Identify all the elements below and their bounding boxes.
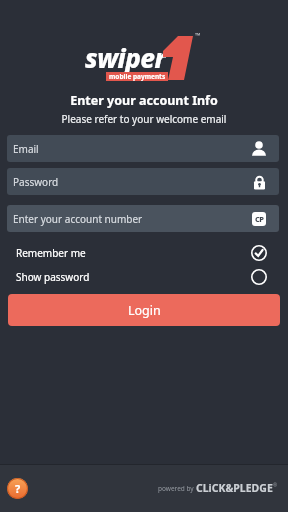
staticText: Show password — [16, 270, 90, 284]
staticText: mobile payments — [109, 72, 166, 81]
staticText: Please refer to your welcome email — [0, 112, 288, 126]
staticText: Login — [128, 302, 161, 319]
staticText: swiper — [85, 40, 166, 75]
staticText: ? — [15, 481, 21, 496]
button[interactable]: Remember me — [7, 244, 280, 262]
staticText: Email — [13, 142, 39, 156]
button[interactable]: Enter your account number — [7, 205, 279, 232]
staticText: Password — [13, 175, 59, 189]
button[interactable]: ? — [7, 478, 28, 499]
button[interactable]: Login — [8, 294, 280, 326]
staticText: Remember me — [16, 246, 86, 260]
staticText: Enter your account number — [13, 212, 143, 226]
button[interactable]: Show password — [7, 268, 280, 286]
button[interactable]: Password — [7, 168, 279, 195]
staticText: ® — [273, 482, 278, 489]
staticText: CP — [255, 214, 264, 224]
staticText: powered by — [158, 484, 196, 493]
button[interactable]: Email — [7, 135, 279, 162]
staticText: Enter your account Info — [0, 92, 288, 109]
staticText: ™ — [195, 31, 201, 41]
staticText: CLiCK&PLEDGE — [196, 481, 273, 495]
